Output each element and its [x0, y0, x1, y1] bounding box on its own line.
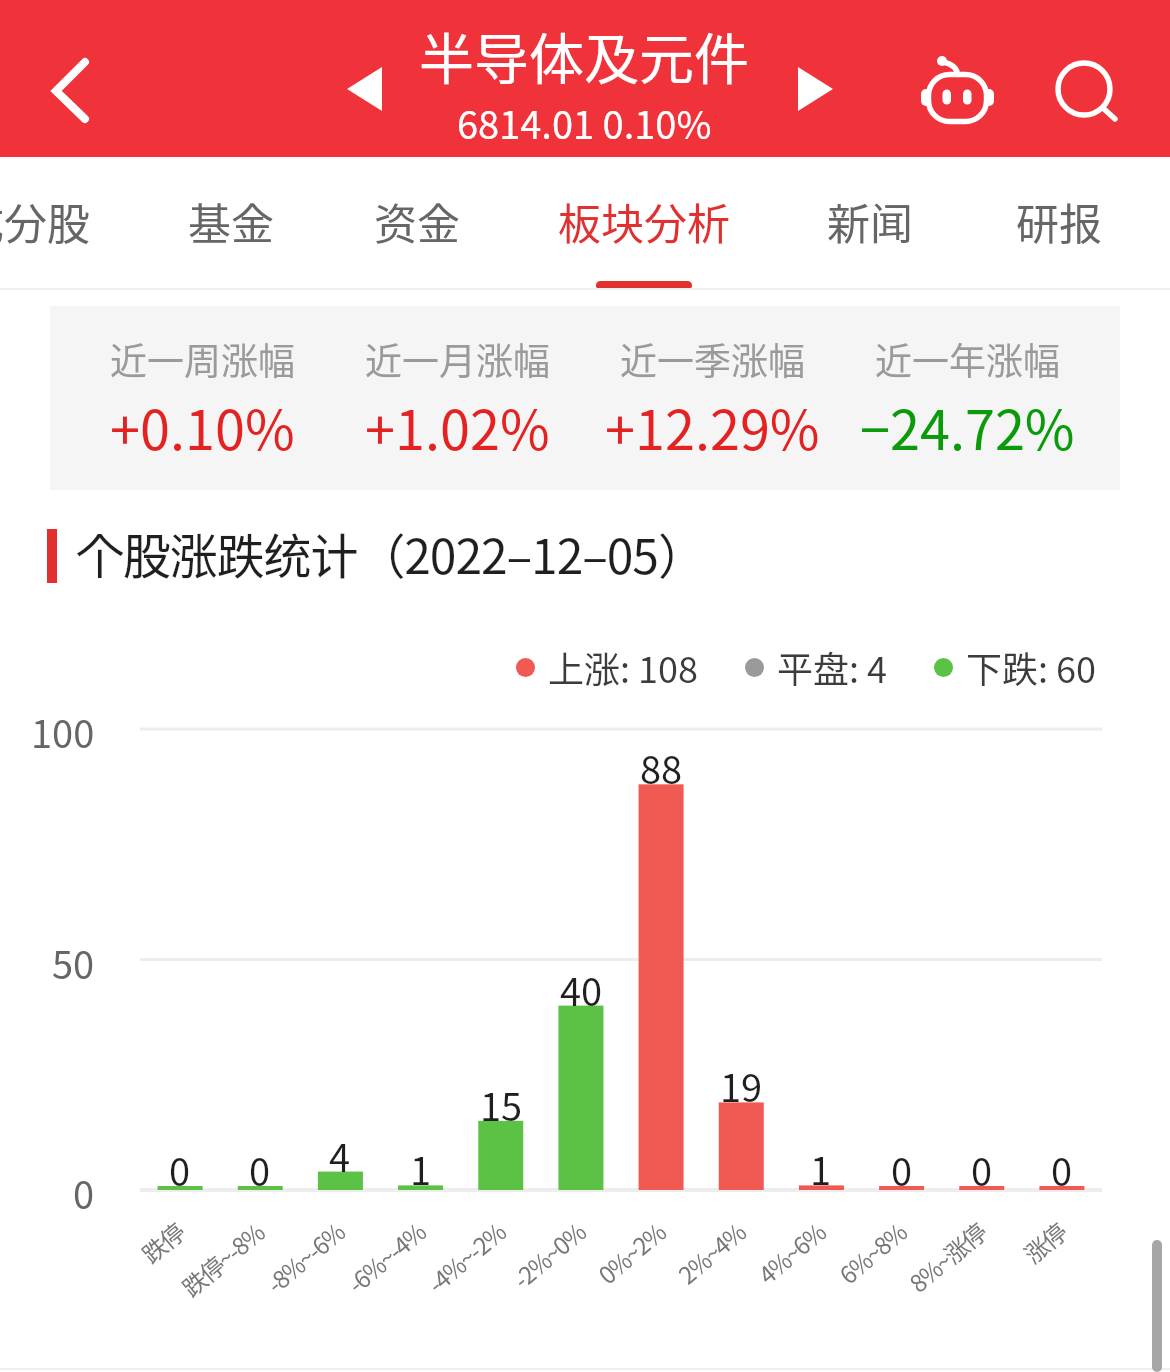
staticText: -4%~-2%	[419, 1214, 512, 1300]
staticText: 15	[480, 1077, 523, 1132]
staticText: 近一季涨幅	[620, 332, 805, 386]
staticText: −24.72%	[860, 387, 1075, 465]
staticText: 40	[560, 962, 603, 1017]
staticText: 6814.01 0.10%	[457, 95, 712, 150]
staticText: 近一月涨幅	[365, 332, 550, 386]
staticText: 新闻	[827, 190, 913, 252]
staticText: 0	[971, 1142, 993, 1197]
button[interactable]: 研报	[949, 157, 1169, 290]
staticText: 0	[891, 1142, 913, 1197]
button[interactable]: 基金	[121, 157, 341, 290]
staticText: 平盘: 4	[777, 641, 888, 693]
staticText: 跌停	[133, 1214, 191, 1270]
staticText: 上涨: 108	[548, 641, 699, 693]
button[interactable]: 资金	[307, 157, 527, 290]
staticText: 板块分析	[558, 190, 730, 252]
button[interactable]: Back	[10, 21, 130, 141]
staticText: -6%~-4%	[339, 1214, 432, 1300]
button[interactable]: 新闻	[760, 157, 980, 290]
staticText: 4	[329, 1128, 351, 1183]
staticText: 8%~涨停	[901, 1214, 993, 1299]
staticText: 4%~6%	[750, 1214, 832, 1291]
staticText: +1.02%	[365, 387, 550, 465]
staticText: 涨停	[1015, 1214, 1073, 1270]
staticText: 19	[720, 1058, 763, 1113]
staticText: 100	[31, 704, 95, 759]
staticText: 研报	[1016, 190, 1102, 252]
button[interactable]: 成分股	[0, 157, 135, 290]
staticText: 50	[52, 935, 95, 990]
staticText: -2%~0%	[505, 1214, 592, 1295]
staticText: 88	[640, 740, 683, 795]
staticText: 跌停~-8%	[174, 1214, 271, 1304]
button[interactable]: Previous sector	[318, 43, 410, 135]
staticText: 近一周涨幅	[110, 332, 295, 386]
button[interactable]: Next sector	[770, 43, 862, 135]
staticText: 个股涨跌统计（2022–12–05）	[76, 518, 705, 588]
staticText: 0	[73, 1165, 95, 1220]
staticText: 0	[1051, 1142, 1073, 1197]
button[interactable]: Search	[1045, 50, 1125, 130]
staticText: 6%~8%	[831, 1214, 913, 1291]
staticText: 0	[249, 1142, 271, 1197]
staticText: 1	[810, 1141, 832, 1196]
button[interactable]: AI assistant	[910, 50, 1002, 130]
staticText: 0%~2%	[590, 1214, 672, 1291]
staticText: 近一年涨幅	[875, 332, 1060, 386]
staticText: 0	[169, 1142, 191, 1197]
button[interactable]: 板块分析	[534, 157, 754, 290]
staticText: -8%~-6%	[258, 1214, 351, 1300]
staticText: 基金	[188, 190, 274, 252]
staticText: 2%~4%	[670, 1214, 752, 1291]
staticText: 下跌: 60	[966, 641, 1097, 693]
staticText: 资金	[374, 190, 460, 252]
staticText: 成分股	[0, 190, 90, 252]
staticText: 半导体及元件	[419, 15, 750, 95]
staticText: +0.10%	[110, 387, 295, 465]
staticText: +12.29%	[605, 387, 820, 465]
staticText: 1	[410, 1141, 432, 1196]
